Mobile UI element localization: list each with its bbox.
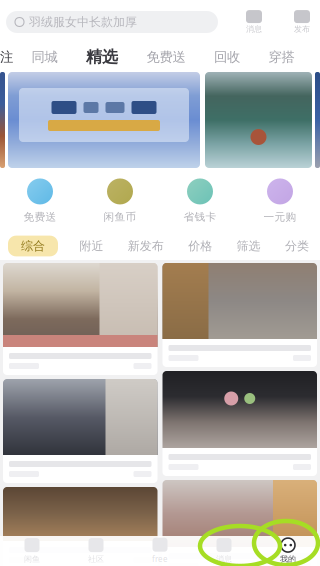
button[interactable]: 闲鱼 [0,538,64,564]
staticText: 精选 [86,47,118,67]
staticText: 省钱卡 [183,210,216,223]
staticText: 筛选 [237,239,261,253]
staticText: 消息 [216,554,232,564]
button[interactable] [8,72,200,168]
staticText: 羽绒服女中长款加厚 [29,15,137,29]
button[interactable]: 分类 [282,239,312,253]
button[interactable]: 消息 [192,538,256,564]
button[interactable]: 社区 [64,538,128,564]
staticText: 我的 [280,554,296,564]
button[interactable] [3,379,157,483]
button[interactable]: 免费送 [143,49,188,65]
button[interactable] [3,487,157,566]
staticText: 同城 [31,49,57,65]
button[interactable] [3,263,157,375]
staticText: 附近 [79,239,103,253]
staticText: 消息 [246,24,262,34]
button[interactable]: 穿搭 [265,49,297,65]
button[interactable]: 回收 [211,49,243,65]
button[interactable]: 同城 [28,49,60,65]
button[interactable]: 闲鱼币 [80,178,160,223]
button[interactable] [162,371,317,476]
staticText: free [152,554,168,564]
staticText: 综合 [21,239,45,253]
staticText: 一元购 [263,210,296,223]
button[interactable]: 发布 [290,10,314,34]
staticText: 免费送 [146,49,185,65]
button[interactable]: free [128,538,192,564]
button[interactable]: 一元购 [240,178,320,223]
staticText: 社区 [88,554,104,564]
staticText: 发布 [294,24,310,34]
staticText: 闲鱼 [24,554,40,564]
button[interactable]: 新发布 [125,239,167,253]
button[interactable]: 羽绒服女中长款加厚 [6,11,218,33]
button[interactable]: 消息 [242,10,266,34]
staticText: 免费送 [23,210,56,223]
button[interactable]: 精选 [83,47,121,67]
button[interactable]: 我的 [256,538,320,564]
staticText: 闲鱼币 [103,210,136,223]
button[interactable] [162,480,317,566]
staticText: 注 [0,49,13,65]
button[interactable] [162,263,317,367]
staticText: 分类 [285,239,309,253]
staticText: 回收 [214,49,240,65]
staticText: 穿搭 [268,49,294,65]
button[interactable]: 价格 [185,239,215,253]
staticText: 价格 [188,239,212,253]
button[interactable]: 注 [0,49,6,65]
button[interactable]: 筛选 [234,239,264,253]
staticText: 新发布 [128,239,164,253]
button[interactable]: 综合 [8,236,58,256]
button[interactable]: 省钱卡 [160,178,240,223]
button[interactable]: 附近 [76,239,106,253]
button[interactable] [205,72,312,168]
button[interactable]: 免费送 [0,178,80,223]
